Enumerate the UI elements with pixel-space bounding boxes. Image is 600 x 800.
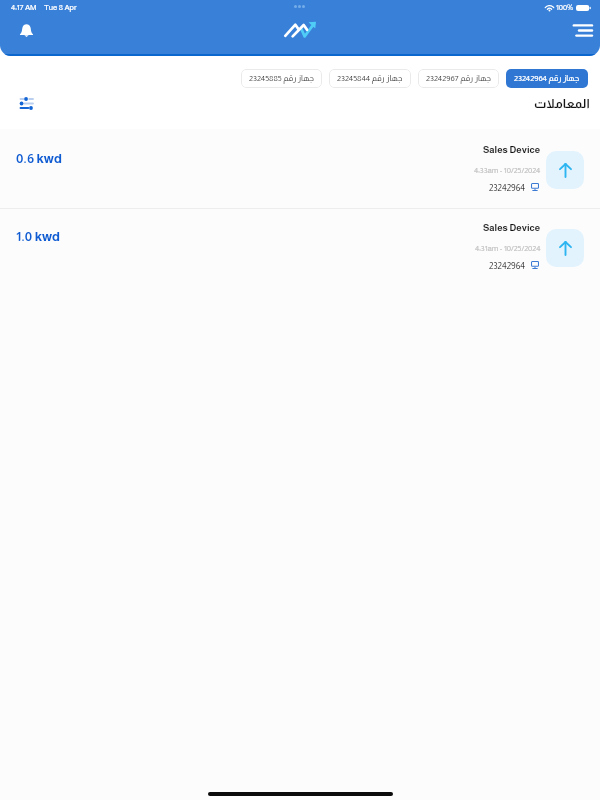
button[interactable]: جهاز رقم 23242967 [418,69,499,88]
button[interactable]: Filter [19,97,34,110]
button[interactable]: Outgoing transaction [546,151,584,189]
staticText: 4:33am - 10/25/2024 [474,166,541,175]
staticText: Sales Device [483,144,541,155]
button[interactable]: Menu [568,18,596,42]
staticText: 4:31am - 10/25/2024 [475,244,541,253]
button[interactable]: Notifications [13,17,39,43]
staticText: جهاز رقم 23242964 [514,74,580,83]
staticText: 23242964 [489,261,526,271]
button[interactable]: 1.0 kwd [0,208,600,285]
staticText: 0.6 kwd [16,151,62,166]
staticText: جهاز رقم 23242967 [426,74,491,83]
staticText: 4:17 AM [11,3,37,12]
button[interactable]: جهاز رقم 23242964 [506,69,588,88]
button[interactable]: جهاز رقم 23245844 [329,69,411,88]
button[interactable]: جهاز رقم 23245885 [241,69,322,88]
staticText: جهاز رقم 23245844 [337,74,403,83]
staticText: جهاز رقم 23245885 [249,74,314,83]
button[interactable]: 0.6 kwd [0,130,600,207]
staticText: Sales Device [483,222,541,233]
staticText: 100% [556,3,573,12]
staticText: 23242964 [489,183,526,193]
button[interactable]: Outgoing transaction [546,229,584,267]
staticText: 1.0 kwd [16,229,61,244]
staticText: المعاملات [534,97,590,111]
staticText: Tue 8 Apr [44,3,77,12]
